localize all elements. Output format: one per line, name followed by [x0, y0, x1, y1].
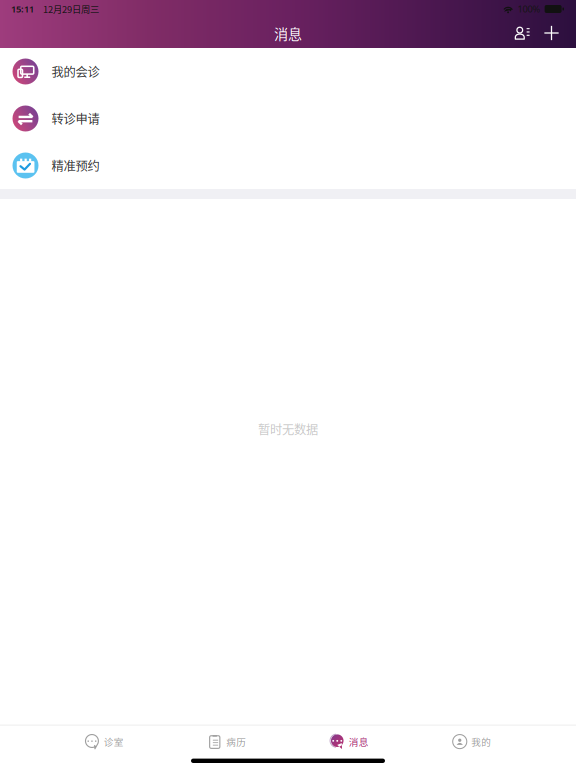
button[interactable]: New message — [536, 18, 567, 48]
button[interactable]: 诊室 — [43, 727, 165, 757]
staticText: 病历 — [226, 735, 246, 748]
button[interactable]: 转诊申请 — [0, 95, 576, 142]
staticText: 消息 — [349, 735, 369, 748]
staticText: 12月29日周三 — [43, 2, 99, 16]
staticText: 100% — [518, 3, 541, 15]
staticText: 我的 — [471, 735, 491, 748]
staticText: 消息 — [274, 23, 302, 43]
button[interactable]: 精准预约 — [0, 142, 576, 189]
staticText: 15:11 — [11, 3, 34, 15]
button[interactable]: 我的 — [410, 727, 533, 757]
staticText: 精准预约 — [51, 157, 99, 174]
button[interactable]: 消息 — [288, 727, 410, 757]
staticText: 暂时无数据 — [258, 420, 318, 438]
staticText: 我的会诊 — [51, 63, 99, 80]
button[interactable]: Contacts — [509, 18, 536, 48]
button[interactable]: 病历 — [165, 727, 288, 757]
staticText: 转诊申请 — [51, 110, 99, 127]
staticText: 诊室 — [104, 735, 124, 748]
button[interactable]: 我的会诊 — [0, 48, 576, 95]
